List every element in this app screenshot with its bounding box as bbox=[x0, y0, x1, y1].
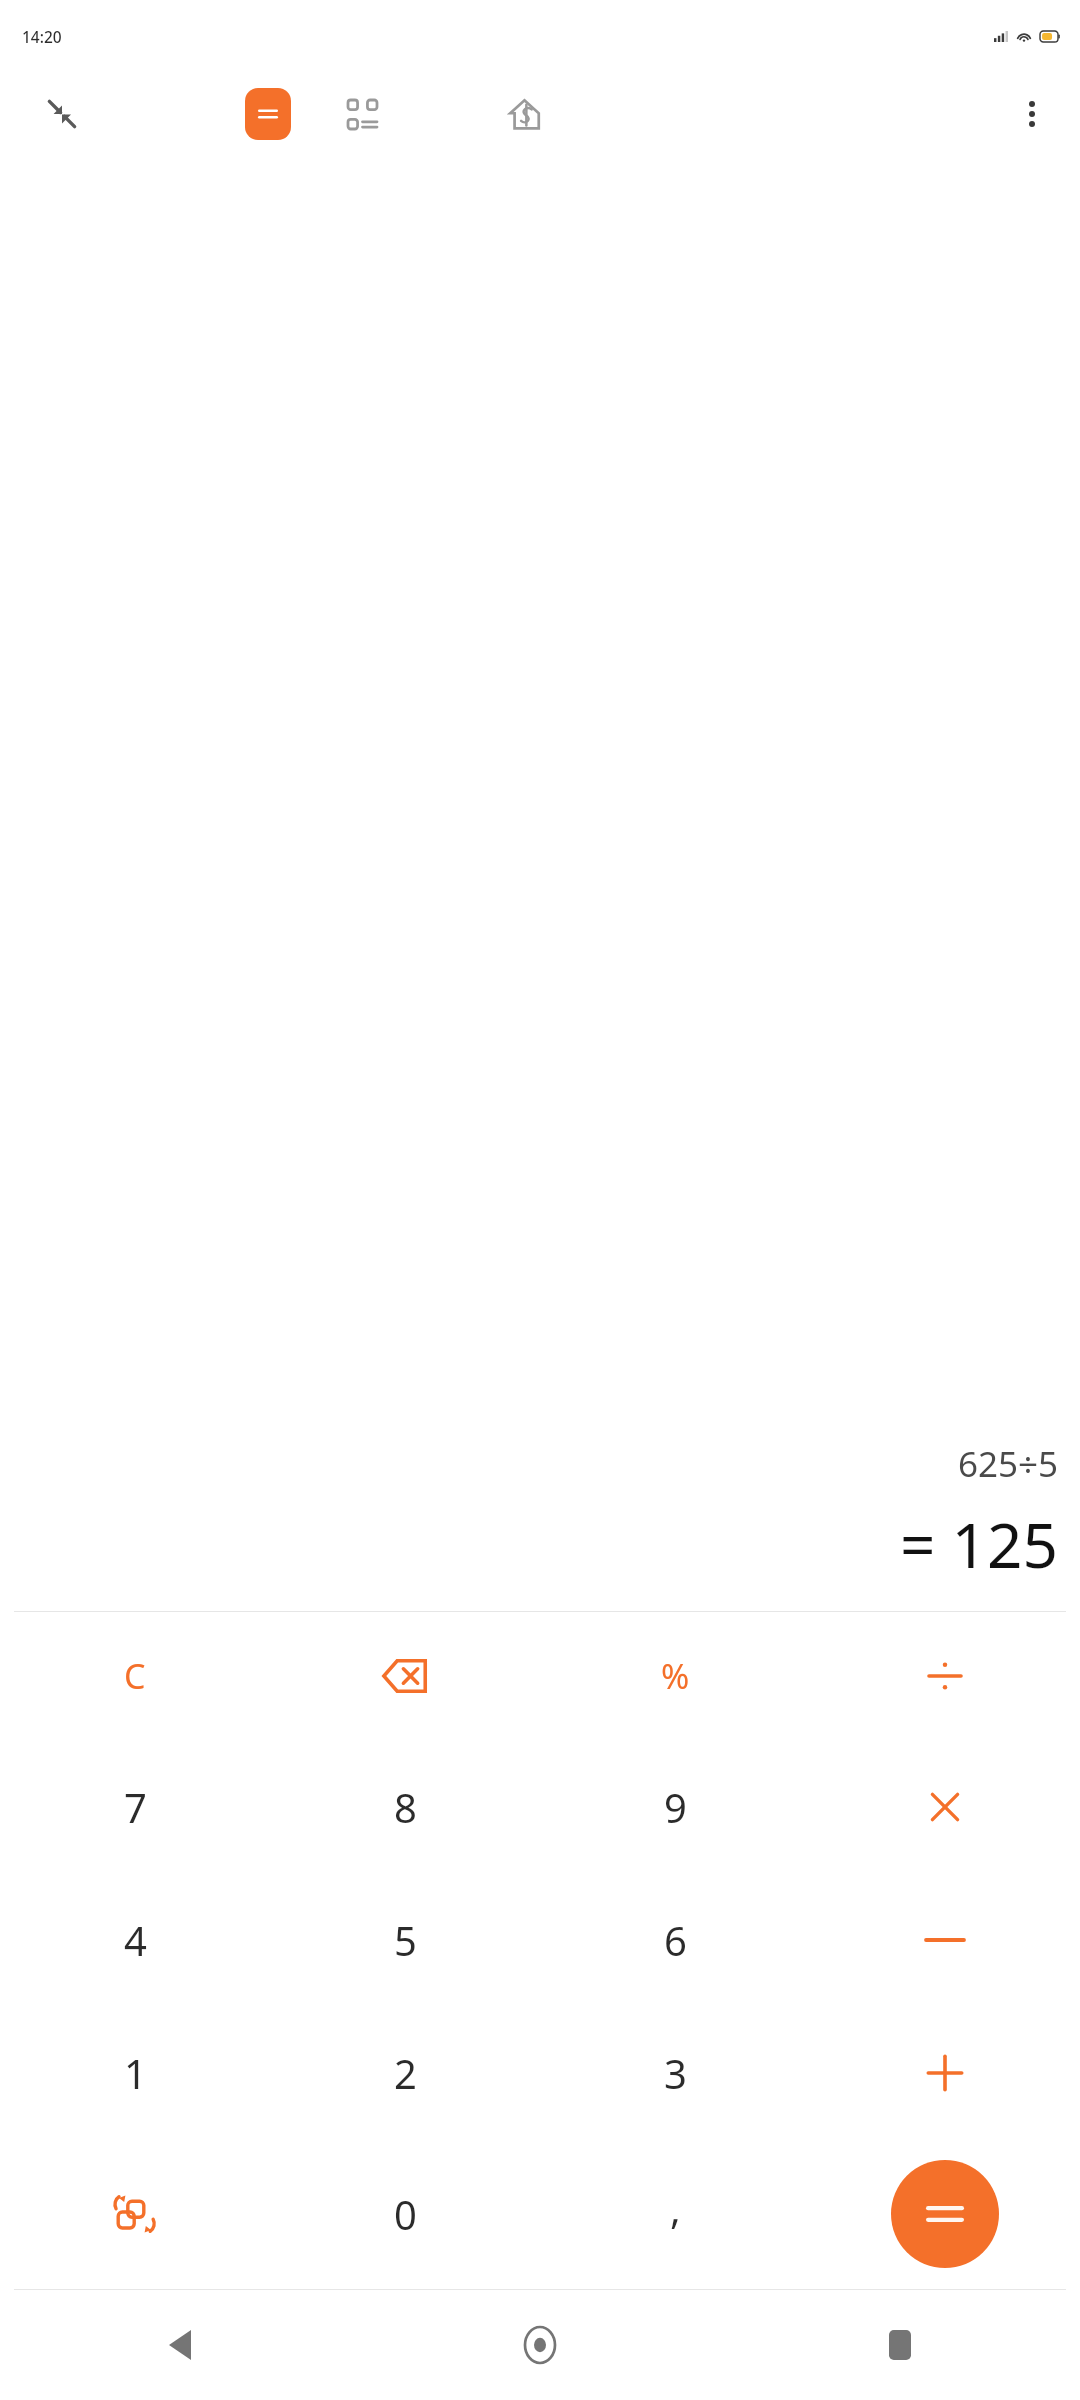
button[interactable]: % bbox=[540, 1612, 810, 1740]
staticText: 9 bbox=[664, 1780, 687, 1834]
staticText: 8 bbox=[394, 1780, 417, 1834]
staticText: = 125 bbox=[900, 1502, 1058, 1586]
staticText: 6 bbox=[664, 1913, 687, 1967]
button[interactable]: Backspace bbox=[270, 1612, 540, 1740]
button[interactable]: Convert bbox=[0, 2139, 270, 2289]
staticText: , bbox=[670, 2181, 681, 2235]
button[interactable]: 3 bbox=[540, 2006, 810, 2139]
button[interactable]: 9 bbox=[540, 1740, 810, 1873]
button[interactable]: Plus bbox=[810, 2006, 1080, 2139]
button[interactable]: Divide bbox=[810, 1612, 1080, 1740]
button[interactable]: Multiply bbox=[810, 1740, 1080, 1873]
button[interactable]: Home bbox=[360, 2290, 720, 2400]
button[interactable]: Recents bbox=[720, 2290, 1080, 2400]
staticText: % bbox=[661, 1653, 690, 1699]
button[interactable]: Back bbox=[0, 2290, 360, 2400]
button[interactable]: C bbox=[0, 1612, 270, 1740]
button[interactable]: Equals bbox=[891, 2160, 999, 2268]
button[interactable]: Mortgage bbox=[496, 86, 552, 142]
staticText: 3 bbox=[664, 2046, 687, 2100]
button[interactable]: 1 bbox=[0, 2006, 270, 2139]
staticText: 4 bbox=[124, 1913, 147, 1967]
staticText: 0 bbox=[394, 2187, 417, 2241]
button[interactable]: , bbox=[540, 2139, 810, 2289]
staticText: 2 bbox=[394, 2046, 417, 2100]
staticText: 5 bbox=[394, 1913, 417, 1967]
staticText: 7 bbox=[124, 1780, 147, 1834]
button[interactable]: 5 bbox=[270, 1873, 540, 2006]
staticText: C bbox=[124, 1653, 146, 1699]
button[interactable]: 2 bbox=[270, 2006, 540, 2139]
button[interactable]: 8 bbox=[270, 1740, 540, 1873]
button[interactable]: Calculator bbox=[245, 88, 291, 140]
button[interactable]: Collapse bbox=[36, 88, 88, 140]
button[interactable]: More options bbox=[1006, 88, 1058, 140]
button[interactable]: 7 bbox=[0, 1740, 270, 1873]
button[interactable]: 6 bbox=[540, 1873, 810, 2006]
staticText: 14:20 bbox=[22, 26, 62, 47]
button[interactable]: Categories bbox=[334, 86, 390, 142]
staticText: 1 bbox=[124, 2046, 147, 2100]
button[interactable]: 0 bbox=[270, 2139, 540, 2289]
staticText: 625÷5 bbox=[957, 1440, 1058, 1488]
button[interactable]: 4 bbox=[0, 1873, 270, 2006]
button[interactable]: Minus bbox=[810, 1873, 1080, 2006]
